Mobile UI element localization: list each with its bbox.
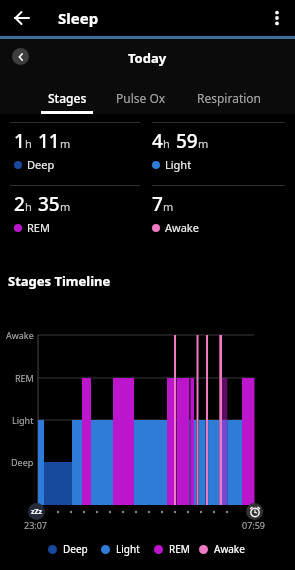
button[interactable]: Light — [101, 542, 140, 556]
staticText: Today — [128, 49, 167, 67]
staticText: 4 — [152, 128, 163, 154]
staticText: 2 — [14, 191, 25, 217]
staticText: 11 — [38, 128, 60, 154]
button[interactable]: Respiration — [195, 85, 263, 111]
staticText: zZz — [31, 507, 42, 517]
staticText: Light — [116, 542, 140, 556]
button[interactable]: Stages — [39, 85, 95, 111]
staticText: 07:59 — [242, 519, 266, 531]
staticText: Pulse Ox — [116, 90, 166, 106]
staticText: Light — [12, 414, 34, 426]
staticText: 23:07 — [24, 519, 48, 531]
staticText: h — [25, 136, 35, 151]
staticText: h — [163, 136, 173, 151]
button[interactable]: Pulse Ox — [111, 85, 171, 111]
staticText: Sleep — [58, 8, 99, 28]
staticText: REM — [169, 542, 190, 556]
button[interactable] — [12, 48, 29, 65]
button[interactable] — [246, 503, 263, 520]
staticText: Awake — [214, 542, 245, 556]
staticText: REM — [15, 372, 34, 384]
button[interactable]: zZz — [28, 503, 45, 520]
button[interactable]: Deep — [48, 542, 88, 556]
staticText: Deep — [63, 542, 88, 556]
staticText: m — [60, 136, 71, 151]
staticText: Deep — [11, 456, 34, 468]
staticText: h — [25, 199, 35, 214]
staticText: Awake — [6, 329, 34, 341]
button[interactable]: REM — [154, 542, 190, 556]
staticText: 35 — [38, 191, 60, 217]
staticText: Stages — [48, 90, 87, 106]
staticText: m — [60, 199, 71, 214]
button[interactable] — [265, 6, 289, 30]
button[interactable] — [9, 5, 35, 31]
button[interactable]: Awake — [199, 542, 245, 556]
staticText: Deep — [27, 157, 55, 172]
staticText: REM — [27, 220, 50, 235]
staticText: m — [198, 136, 209, 151]
staticText: 1 — [14, 128, 25, 154]
staticText: Awake — [165, 220, 199, 235]
staticText: 7 — [152, 191, 163, 217]
staticText: m — [163, 199, 174, 214]
staticText: Respiration — [197, 90, 262, 106]
staticText: 59 — [176, 128, 198, 154]
staticText: Stages Timeline — [8, 272, 111, 290]
staticText: Light — [165, 157, 192, 172]
